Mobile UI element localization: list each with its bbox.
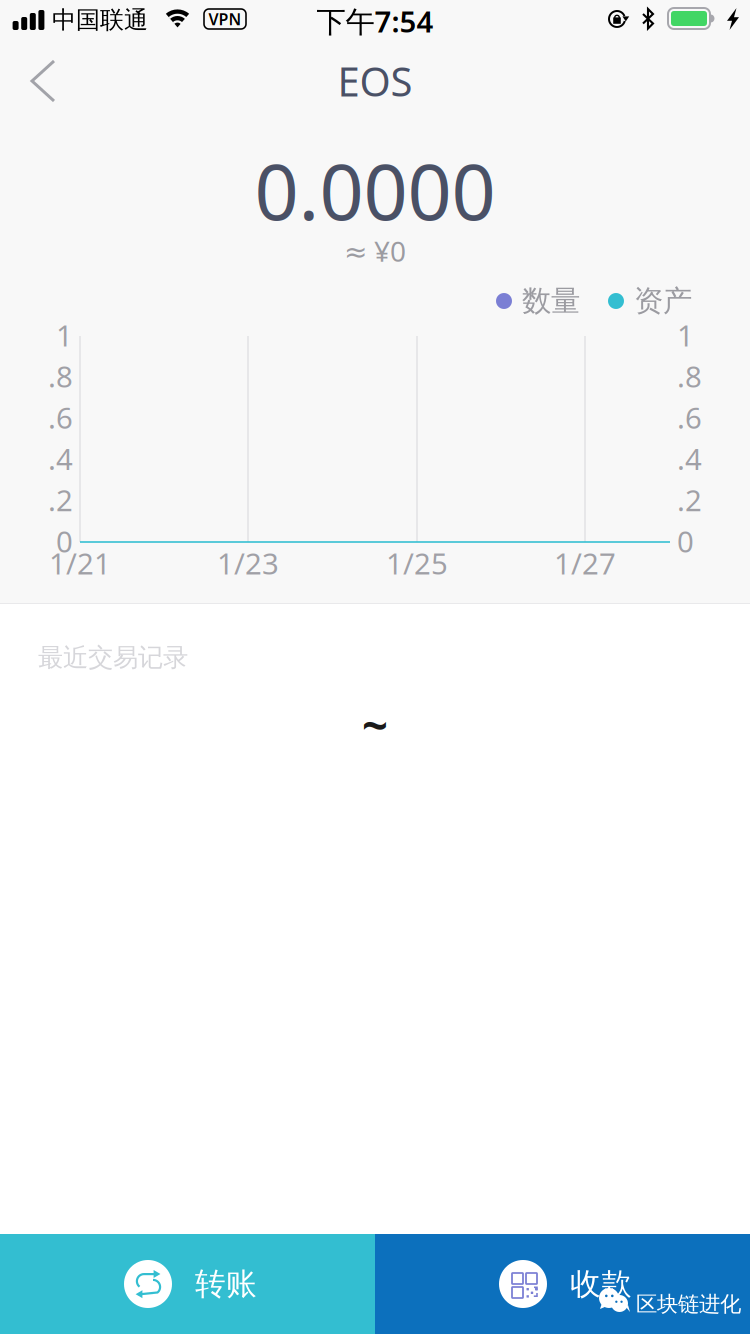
staticText: 1 bbox=[677, 315, 694, 354]
staticText: 1/23 bbox=[217, 543, 279, 582]
staticText: 1/21 bbox=[49, 543, 111, 582]
staticText: 数量 bbox=[522, 283, 580, 319]
staticText: 0 bbox=[56, 521, 73, 560]
staticText: 中国联通 bbox=[52, 5, 148, 35]
staticText: 资产 bbox=[634, 283, 692, 319]
staticText: 转账 bbox=[195, 1265, 257, 1303]
staticText: .6 bbox=[677, 398, 702, 437]
staticText: .4 bbox=[677, 439, 702, 478]
staticText: 最近交易记录 bbox=[38, 642, 188, 673]
button[interactable]: 转账 bbox=[0, 1234, 375, 1334]
staticText: .4 bbox=[48, 439, 73, 478]
staticText: .8 bbox=[48, 357, 73, 396]
staticText: ~ bbox=[362, 694, 388, 754]
staticText: 0.0000 bbox=[254, 139, 495, 241]
staticText: EOS bbox=[337, 54, 412, 107]
button[interactable]: Back bbox=[0, 44, 82, 118]
staticText: .2 bbox=[48, 480, 73, 519]
staticText: .8 bbox=[677, 357, 702, 396]
staticText: 1/25 bbox=[386, 543, 448, 582]
staticText: 下午7:54 bbox=[316, 1, 433, 40]
staticText: 收款 bbox=[570, 1265, 632, 1303]
staticText: 1 bbox=[56, 315, 73, 354]
staticText: 0 bbox=[677, 521, 694, 560]
button[interactable]: 收款 bbox=[375, 1234, 750, 1334]
staticText: .2 bbox=[677, 480, 702, 519]
staticText: VPN bbox=[208, 8, 241, 30]
staticText: .6 bbox=[48, 398, 73, 437]
staticText: ≈ ¥0 bbox=[344, 232, 406, 270]
staticText: 1/27 bbox=[554, 543, 616, 582]
staticText: 区块链进化 bbox=[636, 1291, 741, 1317]
